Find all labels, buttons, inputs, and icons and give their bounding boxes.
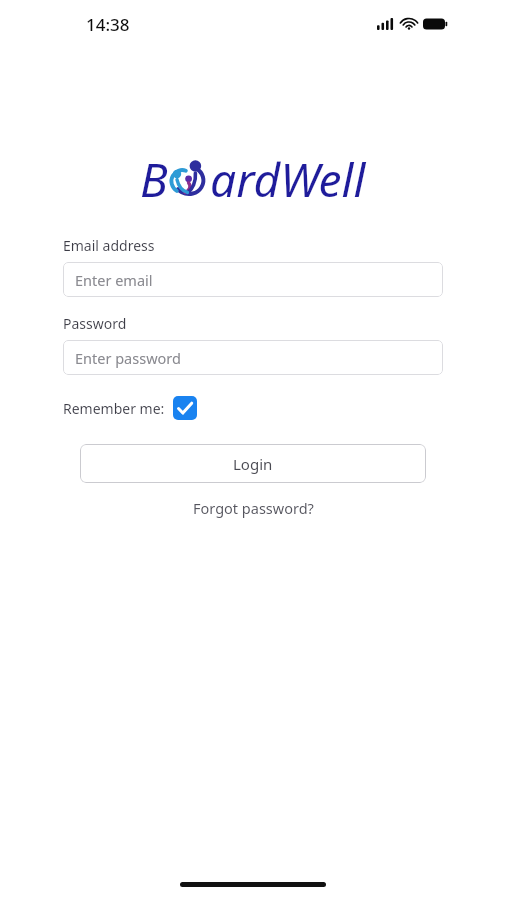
staticText: Email address [63,236,155,255]
other: BoardWell logo [140,148,366,211]
button[interactable]: Remember me checkbox [173,396,197,420]
staticText: Enter email [75,270,153,290]
button[interactable]: Enter password [63,340,443,375]
button[interactable]: Remember me: [63,394,197,422]
button[interactable]: Enter email [63,262,443,297]
staticText: Enter password [75,348,181,368]
button[interactable]: Login [80,444,426,483]
staticText: Forgot password? [193,498,314,518]
staticText: ardWell [210,148,366,211]
staticText: Remember me: [63,399,165,418]
staticText: B [140,148,168,211]
staticText: Password [63,314,127,333]
staticText: 14:38 [86,13,130,36]
button[interactable]: Forgot password? [183,494,324,522]
staticText: Login [233,454,273,474]
